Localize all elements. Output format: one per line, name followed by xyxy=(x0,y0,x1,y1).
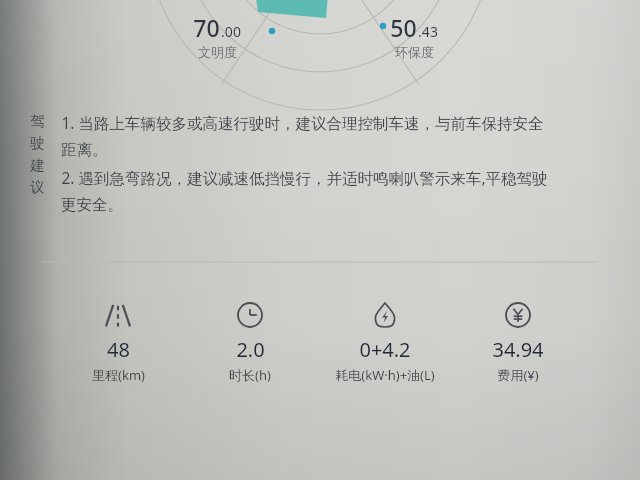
staticText: 文明度 xyxy=(198,44,237,60)
staticText: 驾 xyxy=(30,112,45,130)
staticText: 更安全。 xyxy=(61,195,123,215)
staticText: 34.94 xyxy=(492,336,544,363)
staticText: 50 xyxy=(390,12,417,43)
staticText: 距离。 xyxy=(61,140,108,160)
staticText: 环保度 xyxy=(395,44,434,60)
button[interactable]: Energy xyxy=(310,300,460,384)
staticText: .43 xyxy=(418,22,438,41)
staticText: 建 xyxy=(30,156,45,174)
staticText: 驶 xyxy=(30,134,45,152)
staticText: 48 xyxy=(107,336,130,363)
button[interactable]: Cost xyxy=(443,300,593,384)
button[interactable]: 50 xyxy=(390,12,438,60)
staticText: 0+4.2 xyxy=(359,336,411,363)
staticText: 时长(h) xyxy=(229,366,271,384)
staticText: 2. 遇到急弯路况，建议减速低挡慢行，并适时鸣喇叭警示来车,平稳驾驶 xyxy=(61,167,548,188)
staticText: .00 xyxy=(221,22,241,41)
staticText: 耗电(kW·h)+油(L) xyxy=(335,366,435,384)
button[interactable]: Mileage xyxy=(43,300,193,384)
staticText: 2.0 xyxy=(236,336,265,363)
staticText: 议 xyxy=(30,178,45,196)
button[interactable]: Duration xyxy=(175,300,325,384)
staticText: 70 xyxy=(193,12,220,43)
staticText: 里程(km) xyxy=(92,366,145,384)
button[interactable]: 70 xyxy=(193,12,241,60)
staticText: 1. 当路上车辆较多或高速行驶时，建议合理控制车速，与前车保持安全 xyxy=(61,112,544,133)
staticText: 费用(¥) xyxy=(497,366,539,384)
